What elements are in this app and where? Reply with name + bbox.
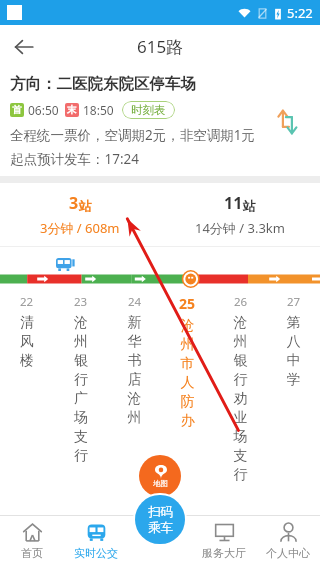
staticText: 11	[224, 192, 243, 214]
staticText: 5:22	[287, 4, 313, 22]
staticText: 站	[79, 198, 92, 214]
staticText: 沧 州 市 人 防 办	[161, 317, 214, 429]
staticText: 扫码	[148, 504, 173, 520]
button[interactable]: 扫码	[135, 495, 185, 544]
button[interactable]: 地图	[139, 455, 181, 497]
staticText: 实时公交	[74, 546, 118, 560]
button[interactable]: Reverse direction	[268, 102, 308, 142]
staticText: 24	[128, 294, 142, 310]
button[interactable]: 服务大厅	[192, 515, 256, 568]
staticText: 全程统一票价，空调期2元，非空调期1元	[10, 126, 255, 144]
staticText: 个人中心	[266, 546, 310, 560]
staticText: 25	[179, 294, 196, 313]
button[interactable]: 24	[108, 292, 161, 426]
staticText: 23	[74, 294, 88, 310]
staticText: 26	[234, 294, 248, 310]
staticText: 615路	[137, 35, 184, 58]
staticText: 18:50	[83, 102, 114, 118]
button[interactable]: 实时公交	[64, 515, 128, 568]
staticText: 第 八 中 学	[267, 314, 320, 388]
button[interactable]: 26	[214, 292, 267, 483]
staticText: 3分钟 / 608m	[40, 219, 120, 237]
button[interactable]: 首页	[0, 515, 64, 568]
button[interactable]: Back	[6, 29, 42, 65]
staticText: 14分钟 / 3.3km	[195, 219, 285, 237]
staticText: 22	[20, 294, 34, 310]
staticText: 沧 州 银 行 广 场 支 行	[54, 314, 108, 464]
staticText: 服务大厅	[202, 546, 246, 560]
staticText: 乘车	[148, 520, 173, 536]
staticText: 地图	[153, 479, 168, 488]
staticText: 06:50	[28, 102, 59, 118]
staticText: 新 华 书 店 沧 州	[108, 314, 161, 426]
staticText: 时刻表	[131, 103, 166, 117]
button[interactable]: 22	[0, 292, 54, 369]
button[interactable]: 23	[54, 292, 108, 464]
button[interactable]: 个人中心	[256, 515, 320, 568]
button[interactable]: 25	[161, 292, 214, 429]
staticText: 首	[12, 104, 22, 116]
staticText: 末	[67, 104, 77, 116]
staticText: 方向：二医院东院区停车场	[10, 74, 196, 94]
staticText: 沧 州 银 行 劝 业 场 支 行	[214, 314, 267, 483]
staticText: 站	[243, 198, 256, 214]
staticText: 清 风 楼	[0, 314, 54, 369]
staticText: 首页	[21, 546, 43, 560]
button[interactable]: 27	[267, 292, 320, 388]
staticText: 起点预计发车：17:24	[10, 150, 140, 168]
staticText: 27	[287, 294, 301, 310]
staticText: 3	[69, 192, 79, 214]
button[interactable]: 时刻表	[122, 101, 175, 119]
